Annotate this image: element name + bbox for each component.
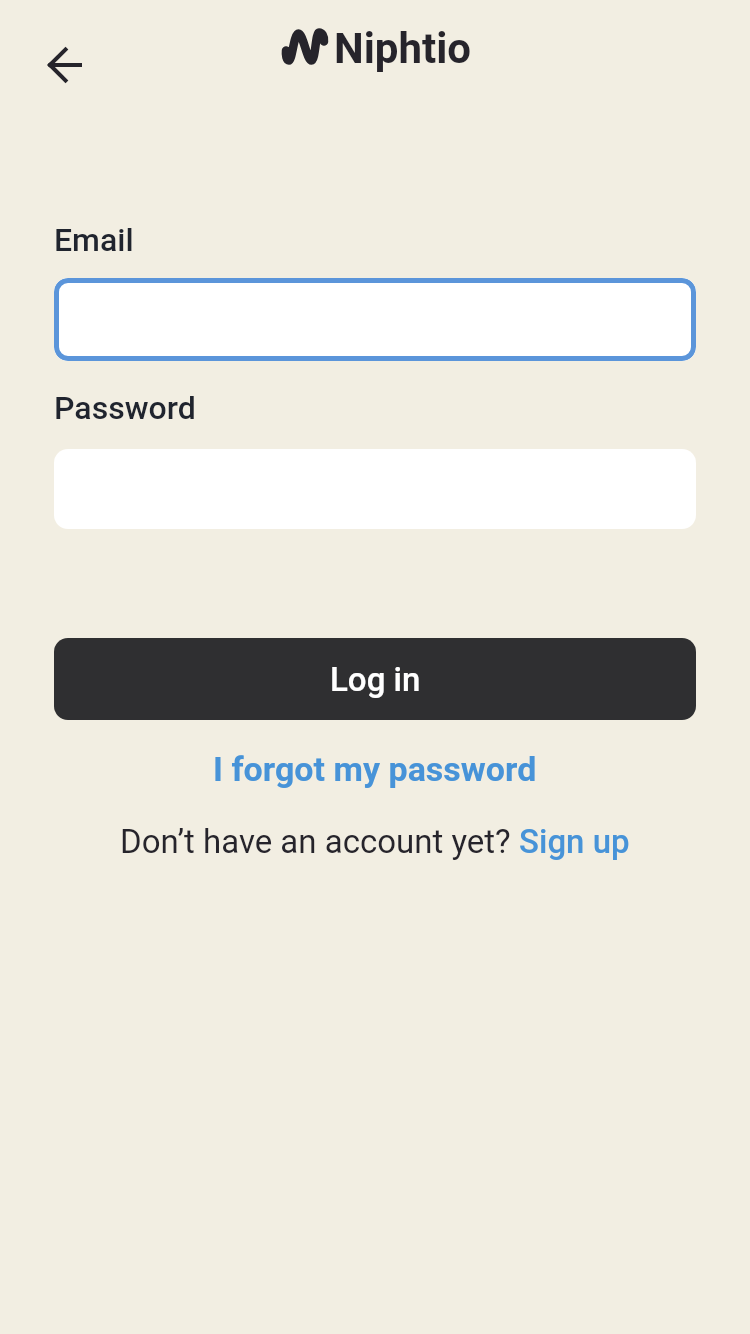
button[interactable] [39,39,91,91]
staticText: Log in [330,660,421,699]
button[interactable]: Log in [54,638,696,720]
staticText: Niphtio [334,24,472,73]
staticText: Don’t have an account yet? [120,822,519,861]
staticText: I forgot my password [213,749,537,789]
staticText: Email [54,221,134,259]
staticText: Password [54,389,196,427]
button[interactable] [54,278,696,361]
staticText: Sign up [519,822,630,861]
button[interactable]: I forgot my password [213,749,537,789]
button[interactable]: Sign up [519,822,630,861]
